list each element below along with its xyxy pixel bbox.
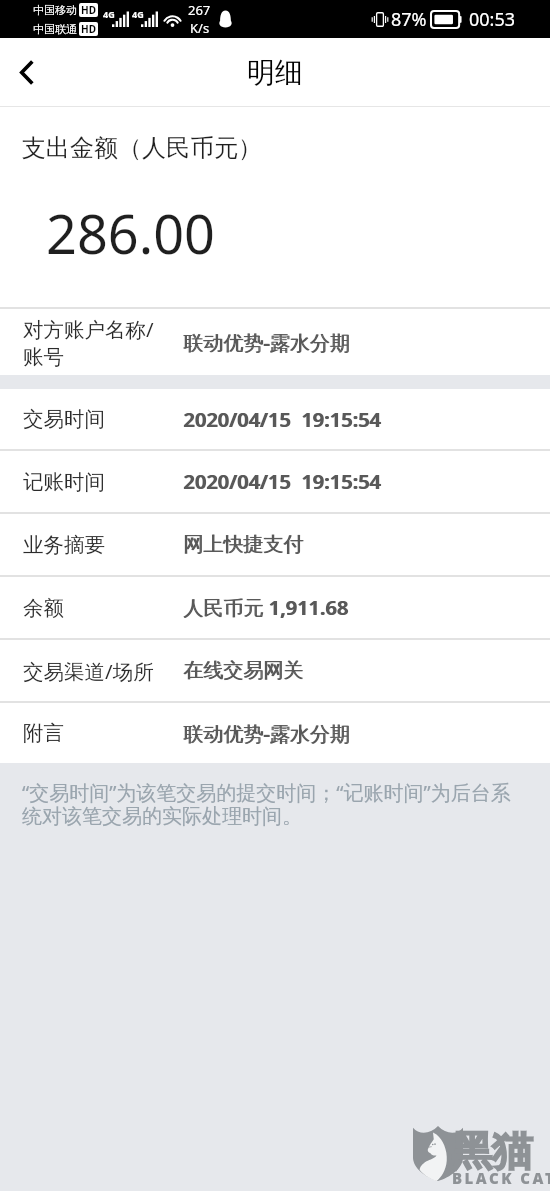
staticText: 余额 (23, 595, 183, 621)
staticText: 网上快捷支付 (184, 532, 304, 557)
button[interactable]: 业务摘要 (0, 514, 550, 575)
staticText: 2020/04/15 19:15:54 (183, 406, 381, 433)
staticText: 黑猫 (451, 1126, 550, 1178)
button[interactable]: Back (0, 38, 54, 106)
staticText: 人民币元 1,911.68 (183, 594, 348, 621)
staticText: 267 (188, 1, 211, 19)
staticText: 记账时间 (23, 469, 183, 495)
staticText: 2020/04/15 19:15:54 (184, 468, 382, 495)
staticText: HD (81, 22, 96, 36)
staticText: 4G (132, 8, 144, 20)
staticText: 人民币元 1,911.68 (184, 594, 349, 621)
button[interactable]: 余额 (0, 577, 550, 638)
staticText: K/s (190, 19, 210, 37)
staticText: 业务摘要 (23, 532, 183, 558)
staticText: 在线交易网关 (183, 658, 303, 683)
staticText: BLACK CAT (452, 1168, 550, 1188)
staticText: 网上快捷支付 (183, 532, 303, 557)
button[interactable]: 附言 (0, 703, 550, 763)
staticText: 交易时间 (23, 406, 183, 432)
staticText: 对方账户名称/ 账号 (23, 315, 183, 370)
staticText: 交易渠道/场所 (23, 657, 183, 685)
staticText: 联动优势-露水分期 (184, 329, 351, 356)
staticText: 在线交易网关 (184, 658, 304, 683)
staticText: 中国移动 (33, 3, 77, 17)
staticText: 联动优势-露水分期 (183, 720, 350, 747)
staticText: 明细 (247, 55, 303, 90)
button[interactable]: 交易时间 (0, 389, 550, 449)
staticText: “交易时间”为该笔交易的提交时间；“记账时间”为后台系统对该笔交易的实际处理时间… (22, 779, 511, 829)
staticText: 支出金额（人民币元） (22, 133, 262, 163)
staticText: 00:53 (469, 7, 516, 32)
staticText: 2020/04/15 19:15:54 (184, 406, 382, 433)
staticText: 联动优势-露水分期 (184, 720, 351, 747)
button[interactable]: 交易渠道/场所 (0, 640, 550, 701)
staticText: 联动优势-露水分期 (183, 329, 350, 356)
staticText: 附言 (23, 720, 183, 746)
staticText: 286.00 (46, 196, 215, 270)
staticText: 87% (391, 7, 427, 32)
button[interactable]: 对方账户名称/ 账号 (0, 309, 550, 375)
staticText: HD (81, 3, 96, 17)
button[interactable]: 记账时间 (0, 451, 550, 512)
staticText: 中国联通 (33, 22, 77, 36)
staticText: 4G (103, 8, 115, 20)
staticText: 2020/04/15 19:15:54 (183, 468, 381, 495)
